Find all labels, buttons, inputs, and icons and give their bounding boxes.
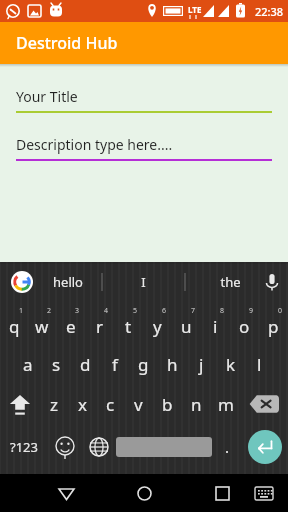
button[interactable]: d (71, 344, 100, 384)
staticText: 5 (133, 306, 138, 316)
button[interactable]: n (182, 384, 211, 424)
staticText: p (268, 315, 279, 338)
staticText: 4 (104, 306, 109, 316)
button[interactable]: Recents (200, 474, 244, 512)
staticText: LTE (188, 4, 202, 15)
button[interactable]: 2 (28, 302, 56, 344)
button[interactable]: Enter (248, 430, 282, 464)
button[interactable]: 3 (56, 302, 85, 344)
staticText: hello (53, 273, 83, 291)
staticText: o (239, 315, 250, 338)
staticText: b (162, 393, 173, 416)
button[interactable]: s (42, 344, 71, 384)
button[interactable]: f (100, 344, 129, 384)
staticText: h (167, 353, 178, 376)
button[interactable]: Description type here.... (16, 135, 272, 161)
staticText: e (66, 315, 76, 338)
button[interactable]: Hide keyboard (244, 474, 284, 512)
staticText: y (153, 315, 162, 338)
staticText: c (106, 393, 115, 416)
button[interactable]: v (124, 384, 153, 424)
staticText: I (141, 273, 146, 291)
button[interactable]: b (153, 384, 182, 424)
button[interactable]: k (216, 344, 245, 384)
button[interactable]: 9 (230, 302, 259, 344)
staticText: 22:38 (255, 4, 284, 19)
staticText: Destroid Hub (16, 32, 118, 54)
staticText: j (199, 353, 204, 376)
staticText: v (134, 393, 143, 416)
staticText: w (35, 315, 49, 338)
staticText: n (191, 393, 202, 416)
button[interactable]: Emoji (48, 424, 82, 470)
staticText: q (9, 315, 20, 338)
button[interactable]: 6 (143, 302, 172, 344)
staticText: m (218, 393, 234, 416)
staticText: Description type here.... (16, 135, 173, 154)
button[interactable]: Back (44, 474, 88, 512)
staticText: u (181, 315, 192, 338)
button[interactable]: m (211, 384, 240, 424)
staticText: f (112, 353, 118, 376)
staticText: 6 (162, 306, 167, 316)
staticText: 9 (249, 306, 254, 316)
staticText: z (50, 393, 58, 416)
button[interactable]: 8 (201, 302, 230, 344)
button[interactable]: hello (38, 262, 98, 302)
button[interactable]: h (158, 344, 187, 384)
staticText: 1 (19, 306, 24, 316)
button[interactable]: Backspace (240, 384, 288, 424)
button[interactable]: l (245, 344, 274, 384)
button[interactable]: Change language (82, 424, 116, 470)
staticText: . (225, 437, 230, 457)
staticText: 7 (191, 306, 196, 316)
staticText: l (257, 353, 262, 376)
staticText: t (125, 315, 132, 338)
button[interactable]: 7 (172, 302, 201, 344)
staticText: 3 (75, 306, 80, 316)
button[interactable]: ?123 (0, 424, 48, 470)
staticText: i (213, 315, 218, 338)
button[interactable]: c (96, 384, 124, 424)
button[interactable]: the (200, 262, 260, 302)
staticText: s (52, 353, 61, 376)
staticText: r (96, 315, 104, 338)
button[interactable]: Shift (0, 384, 40, 424)
button[interactable]: a (14, 344, 42, 384)
staticText: d (80, 353, 91, 376)
button[interactable]: j (187, 344, 216, 384)
button[interactable]: 1 (0, 302, 28, 344)
button[interactable]: 5 (114, 302, 143, 344)
staticText: g (138, 353, 149, 376)
button[interactable]: z (40, 384, 68, 424)
staticText: 2 (47, 306, 52, 316)
staticText: the (220, 273, 241, 291)
staticText: x (78, 393, 87, 416)
button[interactable]: x (68, 384, 96, 424)
button[interactable]: 0 (259, 302, 288, 344)
staticText: a (23, 353, 33, 376)
staticText: 0 (278, 306, 283, 316)
button[interactable]: . (212, 424, 242, 470)
button[interactable]: 4 (85, 302, 114, 344)
staticText: k (226, 353, 236, 376)
button[interactable]: g (129, 344, 158, 384)
button[interactable]: I (113, 262, 173, 302)
button[interactable]: Space (116, 437, 212, 457)
staticText: Your Title (16, 87, 78, 106)
staticText: 8 (220, 306, 225, 316)
button[interactable]: Home (122, 474, 166, 512)
button[interactable]: Your Title (16, 87, 272, 113)
staticText: ?123 (10, 438, 38, 456)
